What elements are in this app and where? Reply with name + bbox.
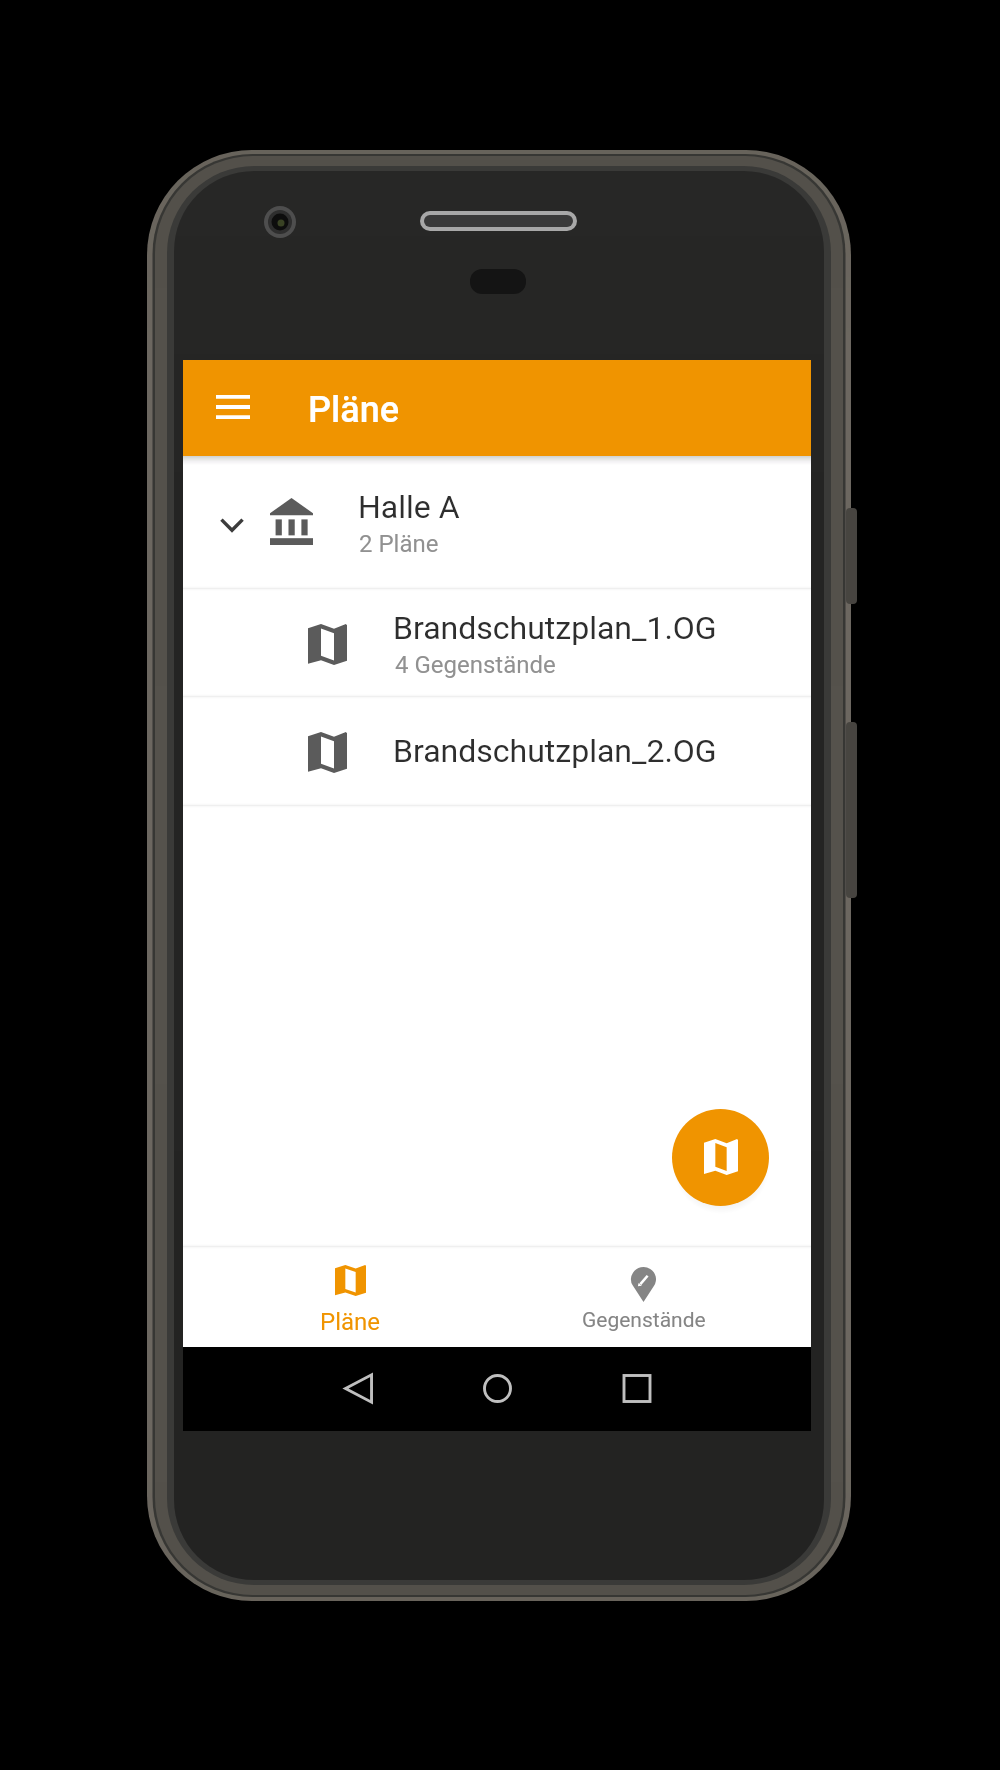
staticText: Brandschutzplan_1.OG <box>393 609 717 647</box>
staticText: 2 Pläne <box>359 530 439 558</box>
staticText: 4 Gegenstände <box>395 651 556 679</box>
staticText: Pläne <box>320 1308 381 1336</box>
staticText: Pläne <box>308 389 400 431</box>
button[interactable]: New plan <box>672 1109 769 1206</box>
button[interactable]: Pläne <box>204 1247 497 1347</box>
button[interactable]: Brandschutzplan_1.OG <box>183 589 811 697</box>
staticText: Gegenstände <box>582 1308 706 1333</box>
staticText: Brandschutzplan_2.OG <box>393 732 717 770</box>
button[interactable]: Brandschutzplan_2.OG <box>183 697 811 806</box>
staticText: Halle A <box>358 488 460 526</box>
button[interactable]: Halle A <box>183 456 811 589</box>
button[interactable]: Open navigation drawer <box>199 373 267 441</box>
button[interactable]: Gegenstände <box>497 1247 790 1347</box>
